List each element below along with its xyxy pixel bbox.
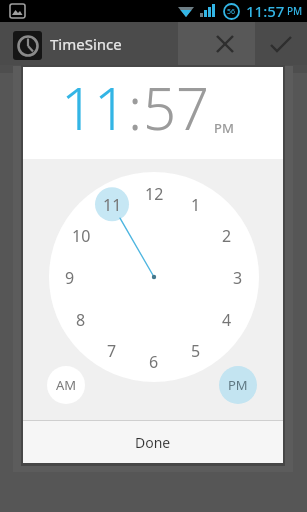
button[interactable]: AM [47,366,85,404]
button[interactable]: PM [219,366,257,404]
staticText: 2 [222,225,232,245]
staticText: Done [135,433,171,452]
button[interactable] [203,22,247,65]
staticText: 56 [227,7,236,17]
staticText: PM [228,376,248,394]
button[interactable]: Done [23,421,283,463]
staticText: PM [214,119,234,137]
staticText: AM [56,376,77,394]
staticText: 1 [191,194,201,214]
staticText: 7 [107,340,117,360]
staticText: 11:57 [246,1,285,21]
staticText: 8 [76,309,86,329]
staticText: 11 [103,194,122,214]
staticText: : [128,68,143,147]
staticText: 57 [143,68,210,147]
staticText: 4 [222,309,232,329]
staticText: 12 [145,183,164,203]
button[interactable] [259,22,303,65]
staticText: TimeSince [50,34,122,54]
staticText: 9 [65,267,75,287]
staticText: 10 [72,225,91,245]
staticText: 3 [233,267,243,287]
staticText: 11 [61,68,128,147]
staticText: 6 [149,351,159,371]
staticText: 5 [191,340,201,360]
staticText: PM [287,4,303,18]
